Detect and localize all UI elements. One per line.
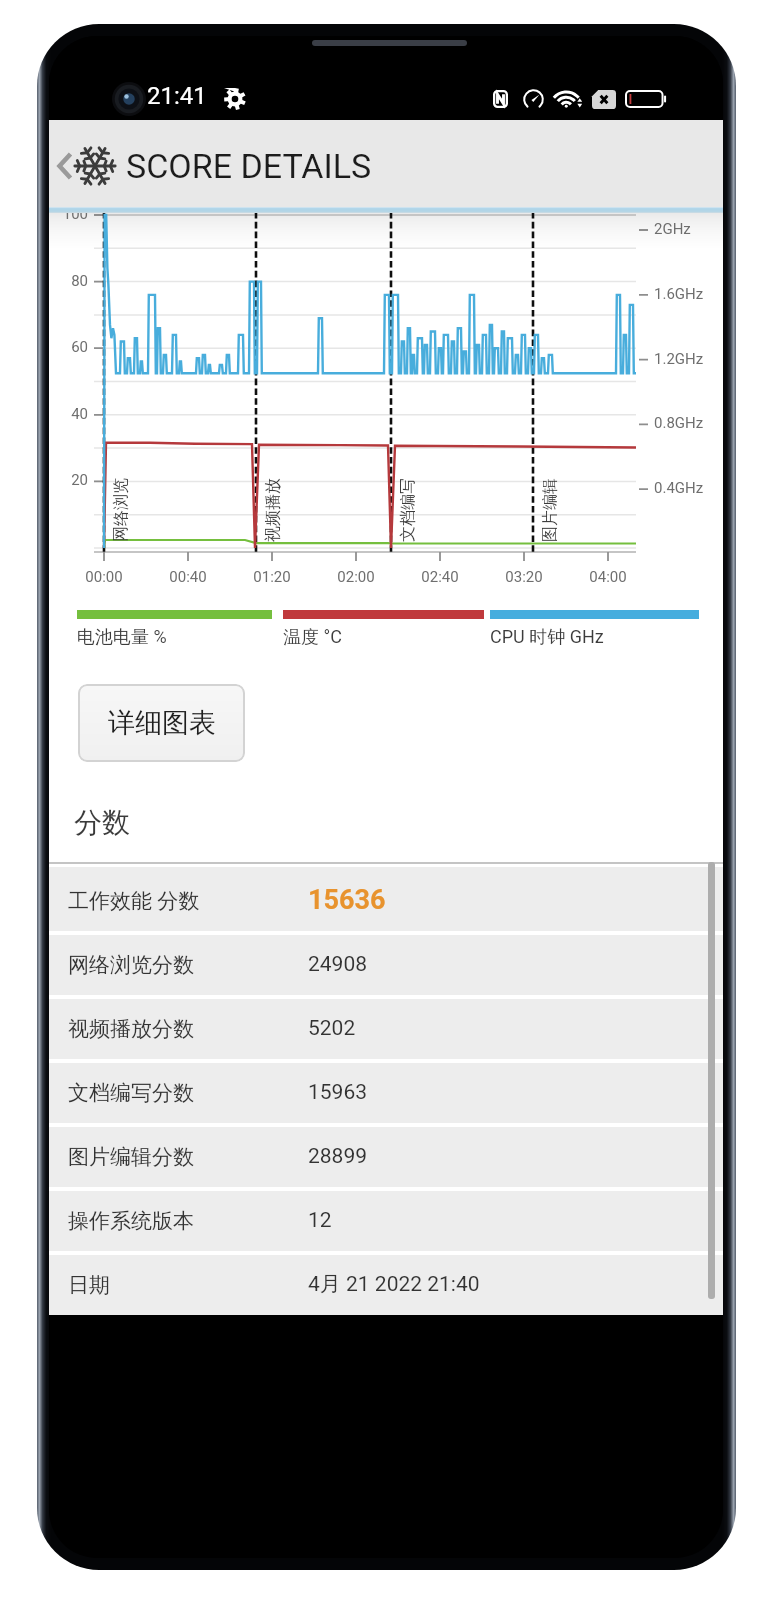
staticText: 5202 <box>308 1016 356 1041</box>
staticText: 15963 <box>308 1080 368 1105</box>
staticText: 图片编辑 <box>540 478 560 542</box>
staticText: 2GHz <box>654 220 691 238</box>
staticText: 02:40 <box>395 568 485 586</box>
staticText: 40 <box>49 405 88 423</box>
staticText: 21:41 <box>147 82 207 110</box>
staticText: 4月 21 2022 21:40 <box>308 1271 480 1297</box>
staticText: 0.4GHz <box>654 479 704 497</box>
staticText: 100 <box>49 205 88 223</box>
staticText: 温度 °C <box>283 626 342 649</box>
staticText: 02:00 <box>311 568 401 586</box>
button[interactable]: 视频播放分数 <box>49 995 723 1059</box>
staticText: 60 <box>49 338 88 356</box>
staticText: SCORE DETAILS <box>126 146 372 186</box>
button[interactable]: Back <box>58 152 72 180</box>
staticText: 00:00 <box>59 568 149 586</box>
staticText: 12 <box>308 1208 332 1233</box>
staticText: 详细图表 <box>108 706 216 740</box>
staticText: 20 <box>49 471 88 489</box>
staticText: 操作系统版本 <box>68 1208 194 1234</box>
button[interactable]: Back <box>49 120 723 207</box>
staticText: 24908 <box>308 952 368 977</box>
button[interactable]: 工作效能 分数 <box>49 867 723 931</box>
button[interactable]: Settings <box>224 88 246 110</box>
staticText: 0.8GHz <box>654 414 704 432</box>
staticText: 00:40 <box>143 568 233 586</box>
staticText: 1.2GHz <box>654 350 704 368</box>
button[interactable]: 日期 <box>49 1251 723 1315</box>
button[interactable]: 操作系统版本 <box>49 1187 723 1251</box>
staticText: 文档编写分数 <box>68 1080 194 1106</box>
staticText: 工作效能 分数 <box>68 888 200 914</box>
staticText: 80 <box>49 272 88 290</box>
staticText: 网络浏览分数 <box>68 952 194 978</box>
button[interactable]: 网络浏览分数 <box>49 931 723 995</box>
staticText: 1.6GHz <box>654 285 704 303</box>
staticText: 日期 <box>68 1272 110 1298</box>
staticText: CPU 时钟 GHz <box>490 626 604 649</box>
staticText: 01:20 <box>227 568 317 586</box>
button[interactable]: 图片编辑分数 <box>49 1123 723 1187</box>
staticText: 03:20 <box>479 568 569 586</box>
staticText: 15636 <box>308 884 386 916</box>
staticText: 图片编辑分数 <box>68 1144 194 1170</box>
staticText: 电池电量 % <box>77 626 167 649</box>
button[interactable]: 文档编写分数 <box>49 1059 723 1123</box>
button[interactable]: 详细图表 <box>78 684 245 762</box>
staticText: 04:00 <box>563 568 653 586</box>
staticText: 网络浏览 <box>111 478 131 542</box>
staticText: 视频播放分数 <box>68 1016 194 1042</box>
staticText: 分数 <box>74 805 130 840</box>
staticText: 视频播放 <box>263 478 283 542</box>
staticText: 文档编写 <box>398 478 418 542</box>
staticText: 28899 <box>308 1144 368 1169</box>
